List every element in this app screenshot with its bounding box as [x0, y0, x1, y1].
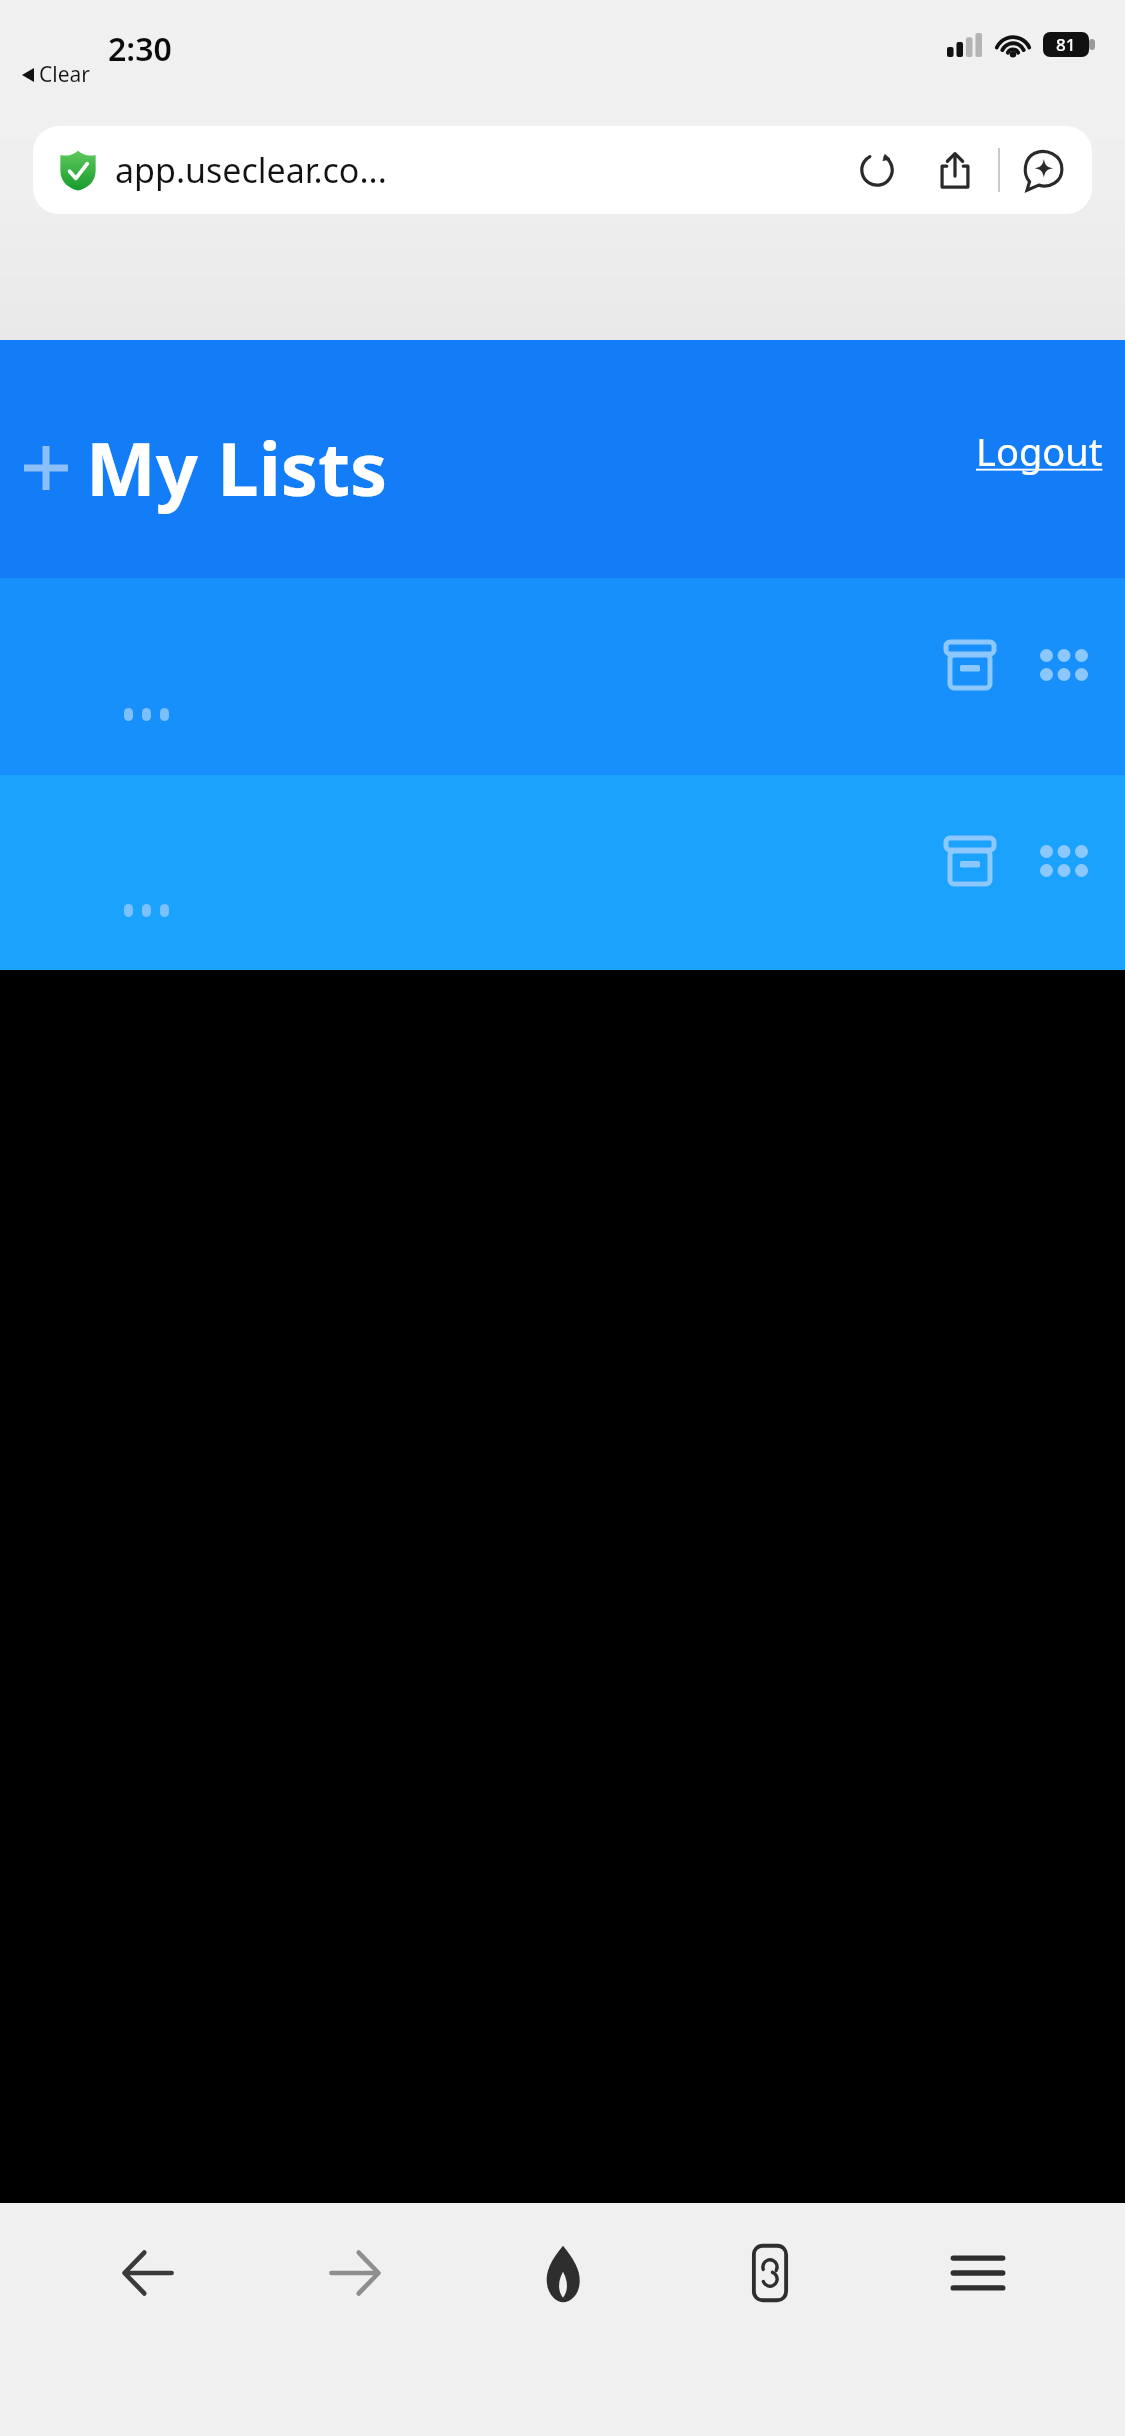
button[interactable]: Archive list: [0, 775, 1125, 970]
button[interactable]: Add list: [14, 436, 78, 500]
button[interactable]: Share: [928, 143, 982, 197]
button[interactable]: Archive list: [931, 822, 1009, 900]
button[interactable]: Reload: [850, 143, 904, 197]
staticText: Clear: [39, 60, 90, 89]
button[interactable]: app.useclear.co...: [33, 126, 1092, 214]
staticText: app.useclear.co...: [115, 147, 387, 193]
button[interactable]: Menu: [918, 2213, 1038, 2333]
button[interactable]: Logout: [954, 413, 1125, 489]
button[interactable]: Forward: [295, 2213, 415, 2333]
button[interactable]: Back: [88, 2213, 208, 2333]
button[interactable]: Reorder list: [1025, 626, 1103, 704]
staticText: Logout: [976, 425, 1103, 477]
button[interactable]: Clear: [18, 58, 94, 91]
button[interactable]: Tabs: [710, 2213, 830, 2333]
button[interactable]: AI assistant: [1016, 143, 1070, 197]
button[interactable]: Reorder list: [1025, 822, 1103, 900]
button[interactable]: Archive list: [0, 578, 1125, 775]
staticText: 81: [1056, 33, 1076, 56]
button[interactable]: Archive list: [931, 626, 1009, 704]
staticText: 2:30: [108, 27, 172, 71]
button[interactable]: Reader: [503, 2213, 623, 2333]
staticText: My Lists: [86, 417, 388, 518]
